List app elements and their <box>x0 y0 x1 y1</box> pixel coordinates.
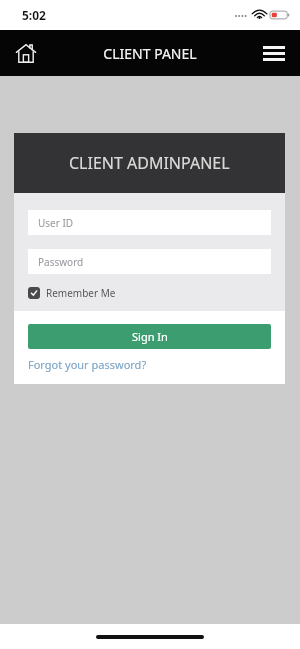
button[interactable]: Home <box>8 35 44 71</box>
staticText: Forgot your password? <box>28 357 147 372</box>
button[interactable]: Menu <box>256 35 292 71</box>
button[interactable]: Remember Me <box>28 286 116 300</box>
staticText: CLIENT ADMINPANEL <box>69 152 230 174</box>
staticText: Password <box>38 255 84 269</box>
staticText: Remember Me <box>46 286 116 300</box>
button[interactable]: Password <box>28 249 271 274</box>
button[interactable]: User ID <box>28 210 271 235</box>
staticText: User ID <box>38 216 74 230</box>
staticText: Sign In <box>132 329 168 344</box>
button[interactable]: Forgot your password? <box>28 357 147 372</box>
staticText: 5:02 <box>22 7 46 23</box>
staticText: CLIENT PANEL <box>103 44 197 63</box>
button[interactable]: Sign In <box>28 324 271 349</box>
